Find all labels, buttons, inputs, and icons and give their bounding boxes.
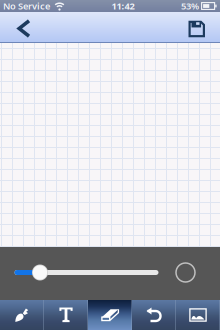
button[interactable]: Eraser (88, 300, 132, 330)
button[interactable]: Back (0, 12, 40, 43)
button[interactable]: Undo (132, 300, 176, 330)
staticText: No Service (3, 0, 50, 12)
button[interactable]: Save (179, 12, 220, 43)
button[interactable]: Stroke colour (0, 247, 44, 300)
staticText: 53% (181, 0, 199, 12)
button[interactable]: Text (44, 300, 88, 330)
button[interactable]: Brush (0, 300, 44, 330)
button[interactable]: Photos (176, 300, 220, 330)
button[interactable]: Brush size (0, 247, 170, 300)
staticText: 11:42 (111, 0, 134, 12)
